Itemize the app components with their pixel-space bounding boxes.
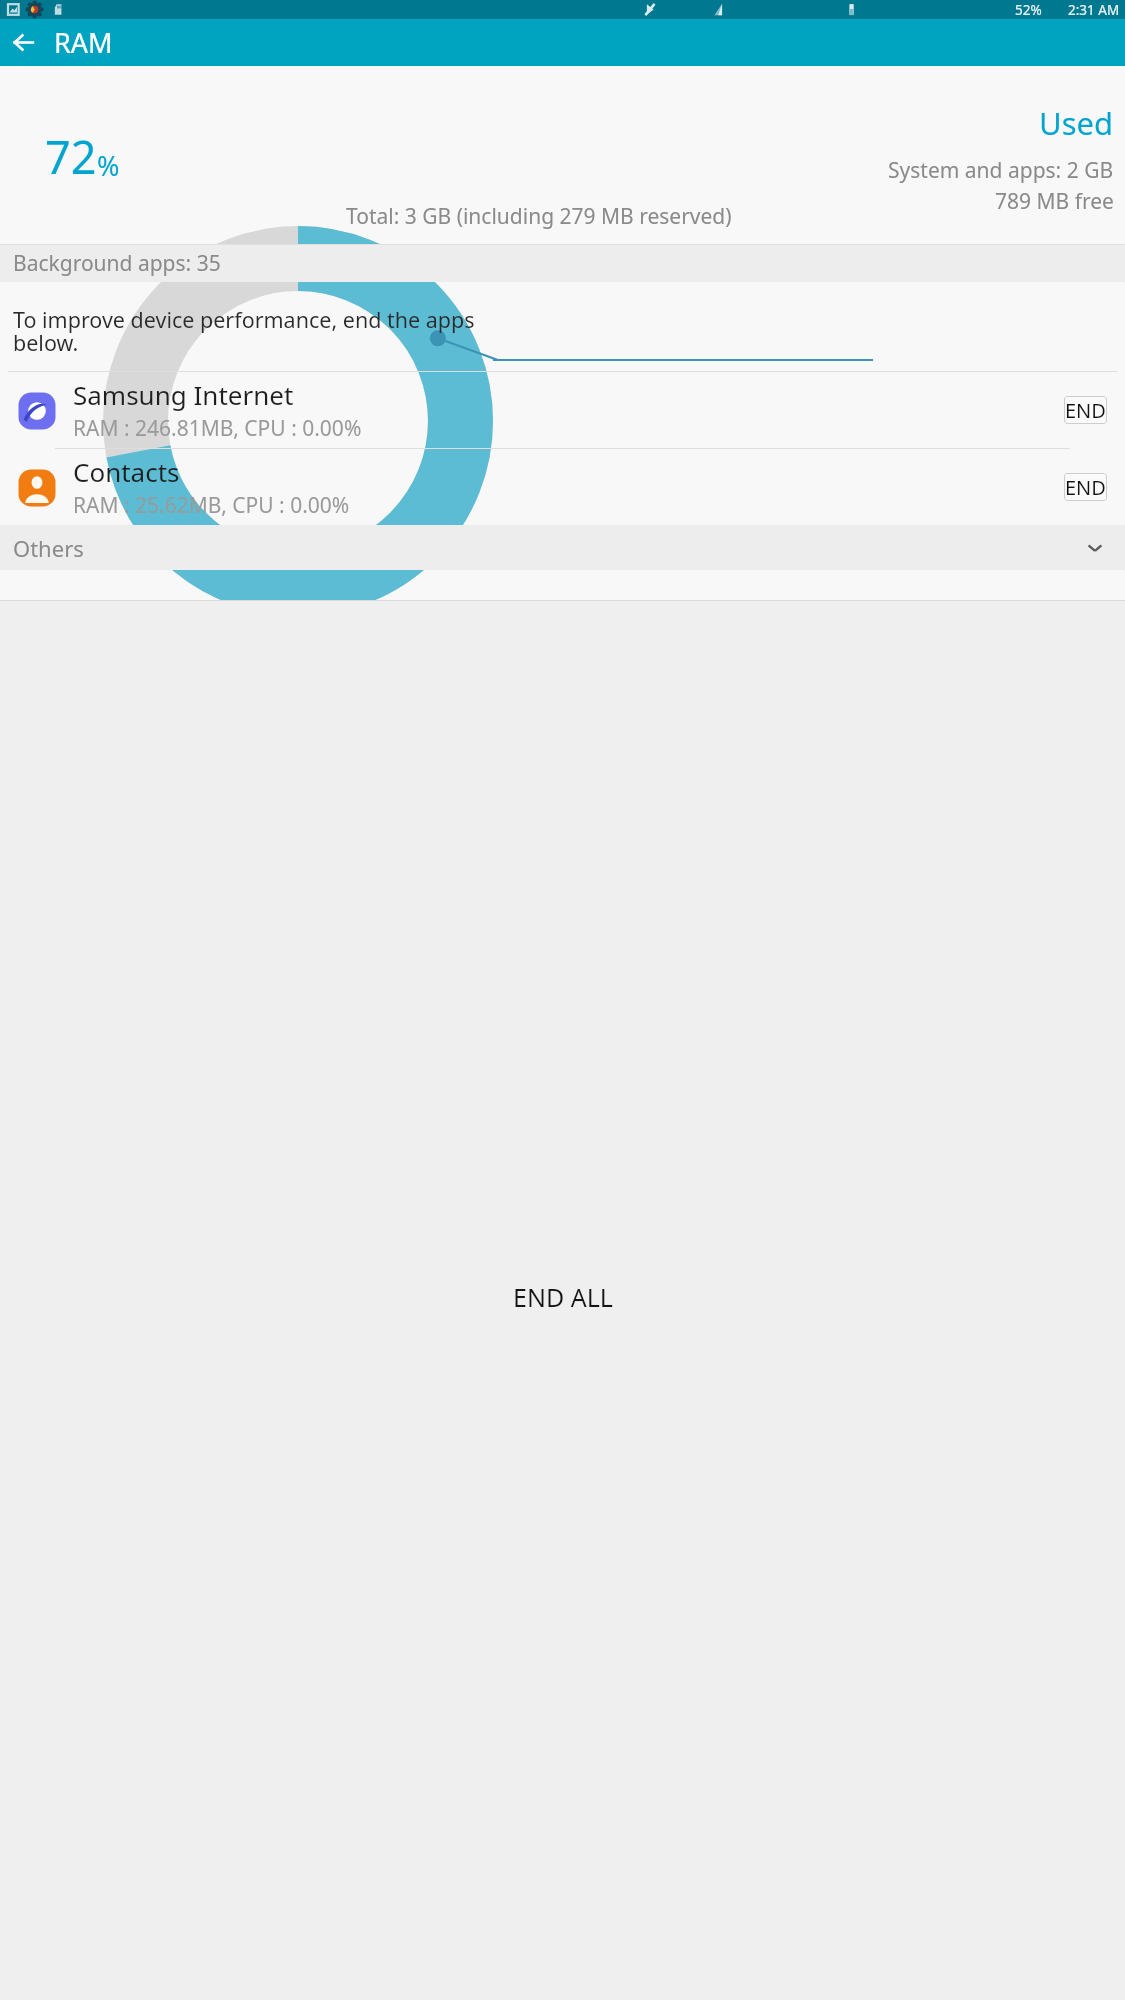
staticText: Others [13,533,84,563]
staticText: Used [1039,102,1114,144]
staticText: 789 MB free [995,187,1114,216]
staticText: 72 [45,126,97,187]
other: Expand Others [1087,540,1103,556]
staticText: System and apps: 2 GB [888,156,1114,185]
staticText: Background apps: 35 [13,249,221,278]
staticText: END [1065,474,1106,501]
staticText: Contacts [73,454,180,489]
button[interactable]: Others [0,525,1125,570]
button[interactable]: Back [0,19,47,66]
button[interactable]: Contacts [0,449,1125,525]
staticText: 2:31 AM [1068,1,1120,19]
staticText: Samsung Internet [73,377,294,412]
staticText: END ALL [513,1280,613,1314]
staticText: Total: 3 GB (including 279 MB reserved) [346,202,732,231]
button[interactable]: END ALL [0,601,1125,2000]
staticText: RAM : 25.62MB, CPU : 0.00% [73,491,350,520]
staticText: % [97,147,120,184]
button[interactable]: END [1064,396,1107,424]
staticText: 52% [1015,1,1042,19]
button[interactable]: Samsung Internet [0,372,1125,448]
staticText: RAM [54,24,113,61]
staticText: END [1065,397,1106,424]
staticText: To improve device performance, end the a… [13,305,475,358]
staticText: RAM : 246.81MB, CPU : 0.00% [73,414,362,443]
button[interactable]: END [1064,473,1107,501]
